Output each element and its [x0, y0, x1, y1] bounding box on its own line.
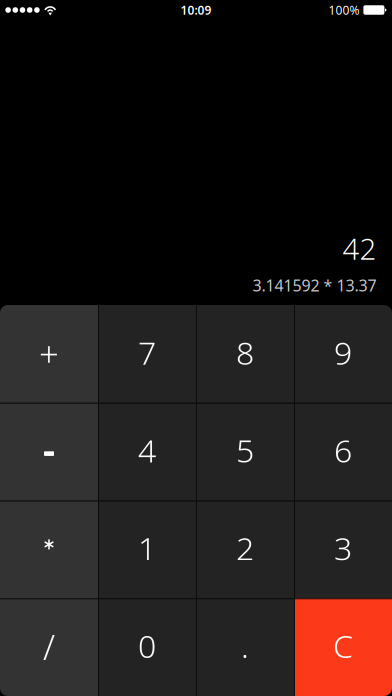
- button[interactable]: +: [0, 305, 98, 403]
- button[interactable]: -: [0, 403, 98, 501]
- button[interactable]: 9: [294, 305, 392, 403]
- staticText: 7: [138, 331, 156, 374]
- button[interactable]: 5: [196, 403, 294, 501]
- button[interactable]: .: [196, 598, 294, 696]
- button[interactable]: C: [294, 598, 392, 696]
- staticText: C: [333, 624, 353, 667]
- staticText: 1: [138, 527, 156, 569]
- staticText: 100%: [328, 2, 359, 18]
- staticText: 8: [236, 331, 254, 374]
- button[interactable]: 4: [98, 403, 196, 501]
- button[interactable]: 6: [294, 403, 392, 501]
- button[interactable]: 3: [294, 500, 392, 598]
- staticText: 4: [138, 429, 156, 471]
- button[interactable]: /: [0, 598, 98, 696]
- staticText: 6: [334, 429, 352, 471]
- staticText: 42: [342, 229, 376, 268]
- staticText: /: [43, 624, 55, 670]
- staticText: 10:09: [180, 2, 211, 18]
- button[interactable]: *: [0, 500, 98, 598]
- button[interactable]: 8: [196, 305, 294, 403]
- button[interactable]: 2: [196, 500, 294, 598]
- staticText: 2: [236, 527, 254, 569]
- button[interactable]: 7: [98, 305, 196, 403]
- button[interactable]: 1: [98, 500, 196, 598]
- staticText: 5: [236, 429, 254, 471]
- staticText: 3: [334, 527, 352, 569]
- staticText: 3.141592 * 13.37: [252, 275, 376, 296]
- staticText: 0: [138, 624, 156, 667]
- staticText: 9: [334, 331, 352, 374]
- staticText: +: [39, 330, 59, 376]
- button[interactable]: 0: [98, 598, 196, 696]
- staticText: .: [241, 624, 249, 667]
